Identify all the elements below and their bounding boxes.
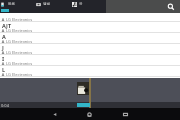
staticText: I [2, 55, 5, 62]
button[interactable]: L [0, 66, 180, 77]
staticText: J [2, 44, 4, 51]
button[interactable]: J [0, 44, 180, 55]
staticText: AJT [2, 22, 12, 29]
button[interactable]: Home [84, 108, 95, 120]
button[interactable]: 곡 [71, 0, 106, 13]
button[interactable]: A [0, 33, 180, 44]
staticText: 곡 [79, 2, 83, 7]
button[interactable]: Now playing [77, 82, 89, 95]
staticText: LG Electronics [6, 72, 33, 77]
button[interactable]: 목록 [0, 0, 35, 13]
button[interactable]: Search [167, 3, 175, 11]
button[interactable]: Recents [120, 108, 131, 120]
staticText: LG Electronics [6, 50, 33, 55]
button[interactable]: 앨범 [35, 0, 71, 13]
staticText: LG Electronics [6, 39, 33, 44]
button[interactable]: Back [50, 108, 61, 120]
staticText: 앨범 [43, 2, 51, 7]
staticText: LG Electronics [6, 28, 33, 33]
staticText: L [2, 66, 6, 73]
button[interactable]: I [0, 55, 180, 66]
staticText: A [2, 33, 6, 40]
button[interactable]: LG Electronics [0, 13, 180, 22]
button[interactable]: AJT [0, 22, 180, 33]
staticText: 목록 [8, 2, 16, 7]
staticText: LG Electronics [6, 61, 33, 66]
staticText: 0:04 [1, 103, 9, 108]
staticText: LG Electronics [6, 17, 33, 22]
